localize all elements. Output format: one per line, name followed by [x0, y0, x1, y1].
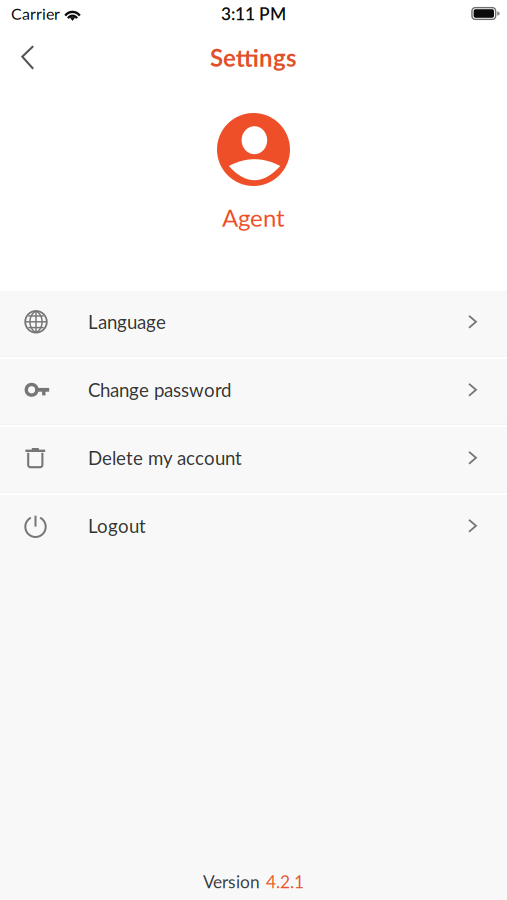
- staticText: Agent: [222, 203, 285, 232]
- button[interactable]: Change password: [0, 359, 507, 424]
- staticText: Carrier: [11, 4, 60, 23]
- staticText: 4.2.1: [266, 871, 304, 892]
- staticText: Version: [203, 871, 260, 892]
- staticText: Change password: [88, 379, 231, 401]
- staticText: Logout: [88, 515, 146, 537]
- button[interactable]: Language: [0, 291, 507, 356]
- staticText: Settings: [210, 43, 297, 72]
- staticText: 3:11 PM: [221, 3, 286, 24]
- staticText: Language: [88, 311, 166, 333]
- staticText: Delete my account: [88, 447, 242, 469]
- button[interactable]: Delete my account: [0, 427, 507, 492]
- button[interactable]: Back: [0, 36, 50, 79]
- button[interactable]: Logout: [0, 495, 507, 560]
